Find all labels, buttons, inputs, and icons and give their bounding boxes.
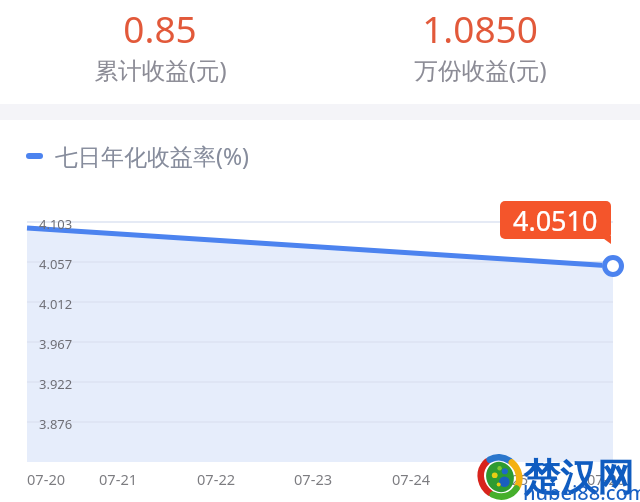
button[interactable]: 4.0510 (500, 201, 611, 239)
staticText: 七日年化收益率(%) (55, 140, 249, 171)
staticText: 07-20 (27, 469, 66, 489)
staticText: 1.0850 (422, 3, 538, 53)
staticText: 楚汉网 (523, 454, 634, 501)
staticText: 07-24 (392, 469, 431, 489)
other: 七日年化收益率走势图 (0, 0, 640, 502)
staticText: 07-23 (294, 469, 333, 489)
button[interactable]: 1.0850 (320, 0, 640, 86)
staticText: 4.0510 (513, 202, 598, 239)
staticText: 07-21 (99, 469, 138, 489)
staticText: 07-25 (490, 469, 529, 489)
staticText: 3.876 (39, 415, 73, 433)
staticText: 4.057 (39, 255, 73, 273)
staticText: 4.012 (39, 295, 73, 313)
staticText: 07-22 (197, 469, 236, 489)
staticText: 累计收益(元) (94, 54, 227, 86)
staticText: hubei88.com (523, 479, 640, 502)
staticText: 07-26 (587, 469, 626, 489)
button[interactable]: 七日年化收益率(%) (26, 140, 249, 171)
button[interactable]: 0.85 (0, 0, 320, 86)
staticText: 0.85 (123, 3, 197, 53)
staticText: 3.967 (39, 335, 73, 353)
staticText: 4.103 (39, 215, 73, 233)
staticText: 3.922 (39, 375, 73, 393)
other: Site logo (478, 454, 522, 500)
staticText: 万份收益(元) (414, 54, 547, 86)
